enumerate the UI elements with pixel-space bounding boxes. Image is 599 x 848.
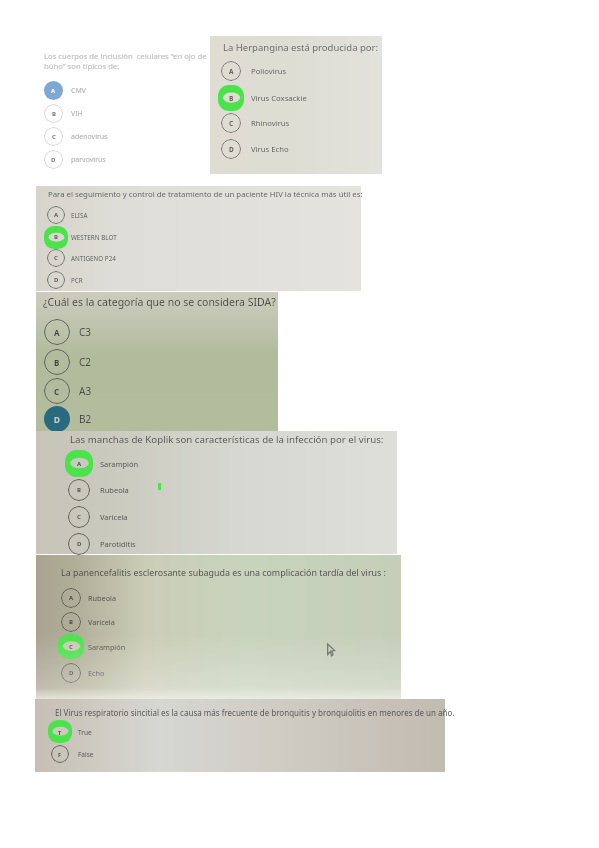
staticText: D	[229, 145, 234, 154]
staticText: Varicela	[100, 512, 128, 522]
staticText: B	[54, 233, 58, 241]
staticText: D	[51, 156, 56, 164]
button[interactable]: D	[44, 150, 141, 169]
staticText: B	[52, 110, 56, 118]
button[interactable]: B	[44, 349, 149, 375]
staticText: B	[229, 94, 234, 103]
button[interactable]: C	[44, 127, 141, 146]
staticText: B	[229, 94, 234, 103]
button[interactable]: T	[51, 723, 148, 741]
staticText: C2	[79, 355, 92, 369]
button[interactable]: D	[221, 139, 321, 159]
button[interactable]: C	[221, 113, 321, 133]
staticText: Rubeola	[88, 593, 117, 603]
staticText: Varicela	[88, 617, 115, 627]
staticText: C	[54, 254, 58, 262]
staticText: B	[54, 357, 60, 368]
staticText: ELISA	[71, 211, 88, 220]
staticText: Echo	[88, 668, 105, 678]
staticText: C	[229, 119, 234, 128]
staticText: La panencefalitis esclerosante subaguda …	[61, 566, 386, 578]
staticText: Sarampión	[100, 459, 139, 469]
button[interactable]: A	[68, 453, 170, 475]
staticText: C	[52, 133, 56, 141]
staticText: D	[54, 276, 59, 284]
staticText: C	[69, 643, 73, 651]
staticText: Poliovirus	[251, 66, 287, 76]
staticText: D	[54, 414, 60, 425]
button[interactable]: A	[61, 588, 158, 608]
staticText: T	[58, 729, 62, 736]
staticText: Las manchas de Koplik son característica…	[70, 433, 384, 446]
staticText: True	[78, 728, 92, 737]
staticText: ANTIGENO P24	[71, 254, 116, 263]
staticText: F	[58, 751, 62, 758]
staticText: T	[58, 729, 62, 736]
staticText: B	[54, 233, 58, 241]
staticText: D	[77, 540, 82, 548]
staticText: WESTERN BLOT	[71, 233, 117, 242]
staticText: CMV	[71, 86, 86, 96]
staticText: A	[69, 594, 74, 602]
staticText: B	[69, 618, 73, 626]
button[interactable]: B	[47, 228, 141, 246]
button[interactable]: B	[44, 104, 141, 123]
staticText: El Virus respiratorio sincitial es la ca…	[55, 707, 455, 718]
staticText: A	[229, 67, 234, 76]
button[interactable]: D	[44, 406, 149, 432]
staticText: parvovirus	[71, 155, 106, 165]
staticText: A	[54, 327, 60, 338]
button[interactable]: A	[221, 61, 321, 81]
button[interactable]: F	[51, 745, 148, 763]
button[interactable]: A	[44, 81, 141, 100]
staticText: A	[77, 460, 82, 468]
staticText: Sarampión	[88, 642, 126, 652]
staticText: Para el seguimiento y control de tratami…	[48, 189, 363, 200]
staticText: Los cuerpos de inclusión celulares “en o…	[44, 51, 207, 71]
button[interactable]: D	[61, 663, 158, 683]
staticText: D	[69, 669, 74, 677]
staticText: La Herpangina está producida por:	[223, 41, 378, 54]
staticText: adenovirus	[71, 132, 108, 142]
button[interactable]: C	[47, 249, 141, 267]
button[interactable]: C	[44, 378, 149, 404]
button[interactable]: A	[44, 319, 149, 345]
staticText: B	[77, 486, 81, 494]
staticText: False	[78, 750, 94, 759]
staticText: Virus Coxsackie	[251, 93, 307, 103]
staticText: Virus Echo	[251, 144, 289, 154]
staticText: A	[54, 211, 59, 219]
button[interactable]: C	[68, 506, 170, 528]
staticText: Parotiditis	[100, 539, 136, 549]
staticText: Rhinovirus	[251, 118, 290, 128]
staticText: A	[77, 460, 82, 468]
staticText: C3	[79, 325, 92, 339]
button[interactable]: D	[47, 271, 141, 289]
staticText: C	[54, 386, 60, 397]
staticText: ¿Cuál es la categoría que no se consider…	[43, 295, 276, 309]
button[interactable]: B	[68, 479, 170, 501]
staticText: Rubeola	[100, 485, 129, 495]
staticText: A	[51, 87, 56, 95]
button[interactable]: A	[47, 206, 141, 224]
staticText: C	[77, 513, 81, 521]
staticText: A3	[79, 384, 92, 398]
button[interactable]: C	[61, 637, 158, 657]
button[interactable]: B	[61, 612, 158, 632]
staticText: C	[69, 643, 73, 651]
staticText: PCR	[71, 276, 83, 285]
button[interactable]: B	[221, 88, 321, 108]
button[interactable]: D	[68, 533, 170, 555]
staticText: VIH	[71, 109, 83, 119]
staticText: B2	[79, 412, 92, 426]
